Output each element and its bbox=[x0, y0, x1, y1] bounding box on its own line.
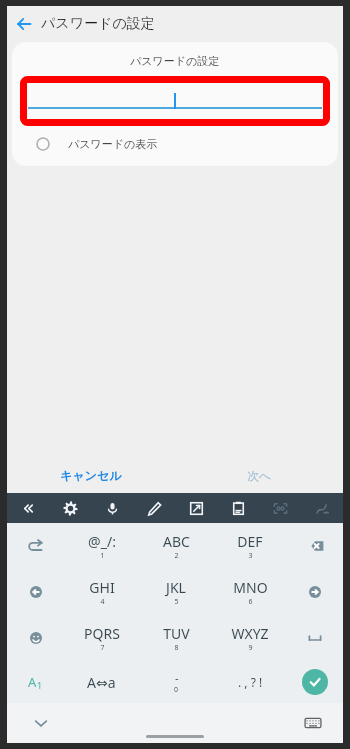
button[interactable]: . , ? ! bbox=[213, 661, 287, 703]
button[interactable]: A⇔a bbox=[64, 661, 139, 703]
staticText: 4 bbox=[100, 597, 105, 607]
staticText: GHI bbox=[89, 578, 115, 597]
button[interactable]: 翻訳 bbox=[259, 493, 301, 523]
button[interactable]: TUV bbox=[139, 615, 213, 661]
staticText: 2 bbox=[174, 551, 179, 561]
staticText: 7 bbox=[100, 643, 105, 653]
button[interactable]: JKL bbox=[139, 569, 213, 615]
staticText: 8 bbox=[174, 643, 179, 653]
button[interactable]: 元に戻す bbox=[7, 523, 64, 569]
button[interactable]: A bbox=[7, 661, 64, 703]
staticText: A bbox=[28, 673, 37, 691]
staticText: 1 bbox=[37, 679, 43, 691]
button[interactable]: パスワードの表示 bbox=[12, 130, 338, 158]
button[interactable]: 拡張 bbox=[175, 493, 217, 523]
button[interactable]: 削除 bbox=[287, 523, 343, 569]
staticText: パスワードの設定 bbox=[41, 15, 155, 33]
staticText: A⇔a bbox=[87, 673, 116, 692]
button[interactable]: 手書き bbox=[301, 493, 343, 523]
button[interactable]: - bbox=[139, 661, 213, 703]
button[interactable]: 戻る bbox=[7, 7, 41, 41]
button[interactable]: @_/: bbox=[64, 523, 139, 569]
staticText: MNO bbox=[233, 578, 268, 597]
staticText: キャンセル bbox=[60, 468, 122, 483]
staticText: 1 bbox=[100, 551, 105, 561]
staticText: JKL bbox=[166, 578, 186, 597]
staticText: TUV bbox=[163, 624, 190, 643]
staticText: 6 bbox=[248, 597, 253, 607]
button[interactable]: クリップボード bbox=[217, 493, 259, 523]
button[interactable]: スペース bbox=[287, 615, 343, 661]
staticText: 9 bbox=[248, 643, 253, 653]
button[interactable]: キャンセル bbox=[7, 457, 175, 493]
button[interactable]: ABC bbox=[139, 523, 213, 569]
button[interactable]: 次へ bbox=[175, 457, 343, 493]
staticText: DEF bbox=[237, 532, 263, 551]
staticText: - bbox=[175, 670, 179, 685]
button[interactable]: 前へ bbox=[7, 493, 49, 523]
button[interactable]: WXYZ bbox=[213, 615, 287, 661]
staticText: 3 bbox=[248, 551, 253, 561]
button[interactable]: PQRS bbox=[64, 615, 139, 661]
button[interactable]: 設定 bbox=[49, 493, 91, 523]
button[interactable]: MNO bbox=[213, 569, 287, 615]
staticText: WXYZ bbox=[231, 624, 269, 643]
button[interactable]: DEF bbox=[213, 523, 287, 569]
button[interactable]: 確定 bbox=[287, 661, 343, 703]
button[interactable]: 絵文字 bbox=[7, 615, 64, 661]
button[interactable] bbox=[28, 93, 322, 109]
button[interactable]: 左へ bbox=[7, 569, 64, 615]
button[interactable]: 手書き入力 bbox=[133, 493, 175, 523]
staticText: パスワードの設定 bbox=[130, 54, 220, 68]
staticText: 次へ bbox=[247, 468, 272, 483]
staticText: 5 bbox=[174, 597, 179, 607]
button[interactable]: 音声入力 bbox=[91, 493, 133, 523]
button[interactable]: 右へ bbox=[287, 569, 343, 615]
button[interactable]: キーボードを閉じる bbox=[27, 709, 55, 737]
staticText: パスワードの表示 bbox=[68, 137, 158, 151]
staticText: 0 bbox=[174, 685, 179, 695]
staticText: ABC bbox=[163, 532, 190, 551]
staticText: PQRS bbox=[84, 624, 120, 643]
staticText: @_/: bbox=[88, 532, 116, 551]
button[interactable]: GHI bbox=[64, 569, 139, 615]
staticText: . , ? ! bbox=[238, 674, 263, 690]
button[interactable]: 入力方法の切り替え bbox=[299, 709, 327, 737]
